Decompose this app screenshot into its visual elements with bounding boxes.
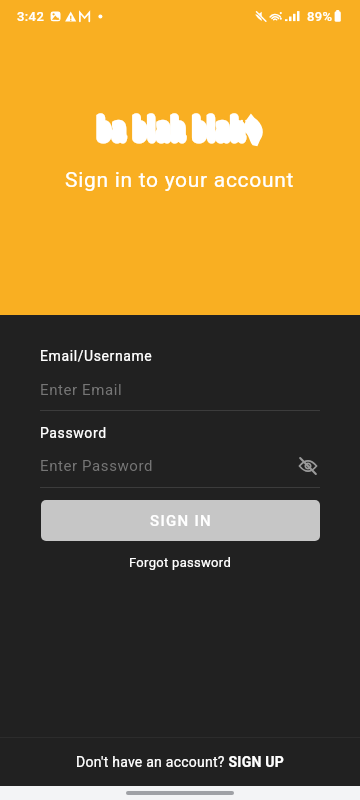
staticText: SIGN IN (150, 512, 212, 530)
staticText: 3:42 (17, 9, 45, 24)
button[interactable]: Forgot password (121, 553, 240, 572)
staticText: Password (40, 425, 107, 441)
button[interactable]: Show password (296, 454, 320, 478)
staticText: Sign in to your account (65, 168, 295, 193)
button[interactable]: SIGN IN (41, 500, 320, 541)
staticText: Enter Email (40, 381, 123, 399)
staticText: 89% (307, 9, 333, 24)
staticText: Don't have an account? SIGN UP (76, 754, 285, 770)
button[interactable]: Don't have an account? SIGN UP (0, 738, 360, 786)
staticText: Email/Username (40, 348, 153, 364)
staticText: Enter Password (40, 457, 154, 475)
